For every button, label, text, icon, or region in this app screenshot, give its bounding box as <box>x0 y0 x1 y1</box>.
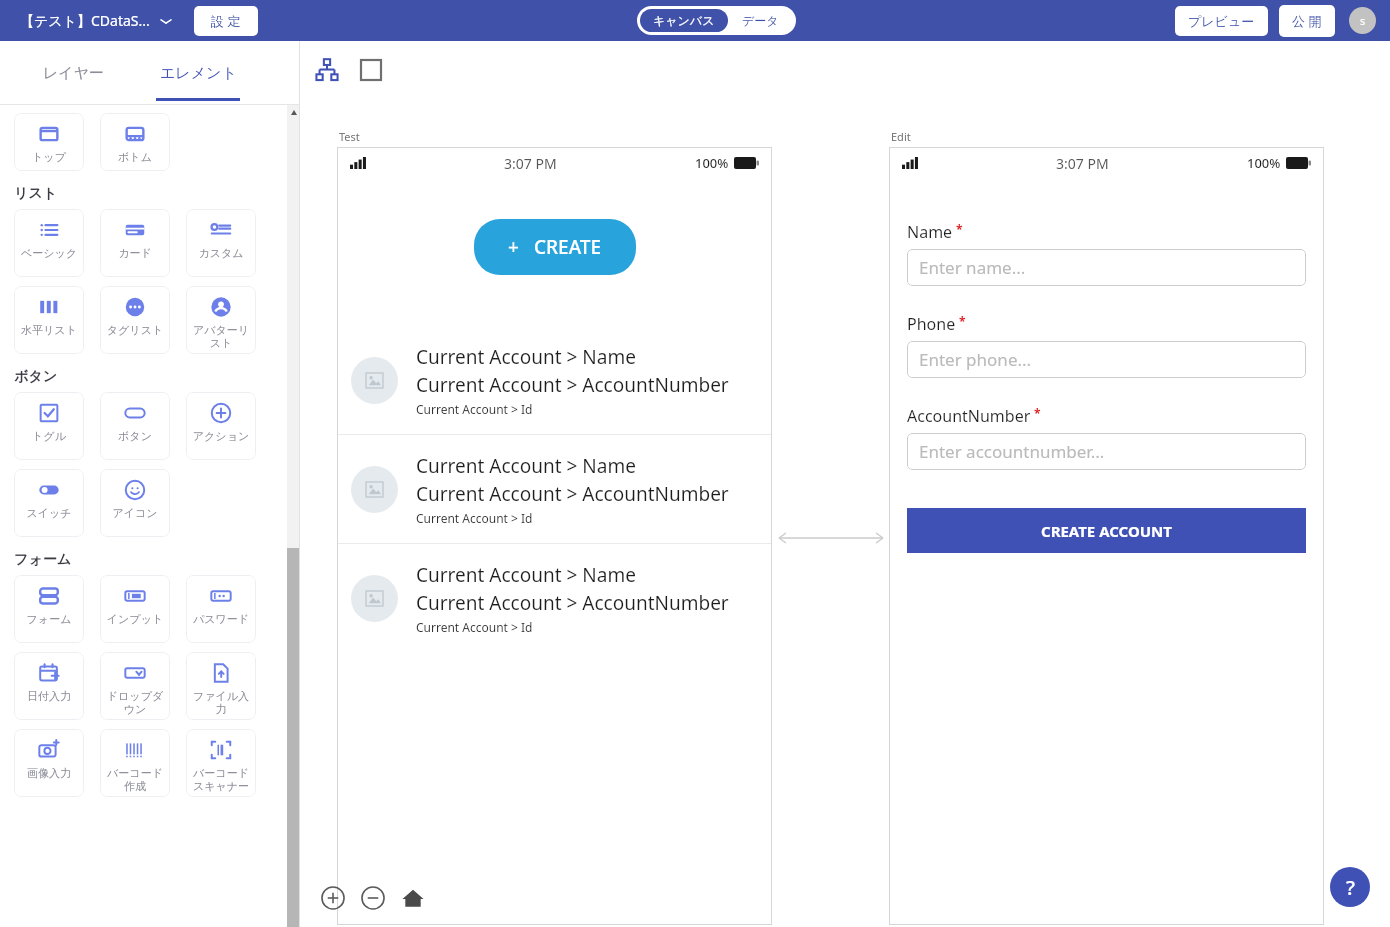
staticText: Test <box>339 129 360 144</box>
button[interactable]: スイッチ <box>14 469 84 537</box>
button[interactable]: + <box>474 219 636 275</box>
staticText: 3:07 PM <box>504 154 557 173</box>
staticText: Edit <box>891 129 911 144</box>
staticText: Current Account > Id <box>416 619 533 635</box>
staticText: s <box>1360 13 1366 28</box>
staticText: ボタン <box>102 429 168 443</box>
button[interactable]: トグル <box>14 392 84 460</box>
staticText: 日付入力 <box>16 689 82 703</box>
staticText: 画像入力 <box>16 766 82 780</box>
staticText: アクション <box>188 429 254 443</box>
staticText: カスタム <box>188 246 254 260</box>
button[interactable]: Home <box>396 881 430 915</box>
button[interactable]: キャンバス <box>640 9 728 32</box>
staticText: 100% <box>1247 154 1281 172</box>
button[interactable]: パスワード <box>186 575 256 643</box>
button[interactable]: アバターリ スト <box>186 286 256 354</box>
staticText: ベーシック <box>16 246 82 260</box>
button[interactable]: ファイル入 力 <box>186 652 256 720</box>
button[interactable]: 水平リスト <box>14 286 84 354</box>
staticText: Current Account > AccountNumber <box>416 590 729 616</box>
staticText: Phone <box>907 313 956 335</box>
staticText: バーコード 作成 <box>102 766 168 794</box>
button[interactable]: 公 開 <box>1279 5 1335 37</box>
staticText: トップ <box>16 150 82 164</box>
staticText: データ <box>742 13 779 28</box>
button[interactable]: Frame <box>356 55 386 85</box>
button[interactable]: アクション <box>186 392 256 460</box>
staticText: バーコード スキャナー <box>188 766 254 794</box>
button[interactable]: Zoom out <box>356 881 390 915</box>
button[interactable]: エレメント <box>148 41 248 105</box>
staticText: エレメント <box>160 64 237 83</box>
staticText: Enter name... <box>919 256 1026 279</box>
button[interactable]: キャンバス <box>637 6 796 35</box>
staticText: 設 定 <box>211 12 241 30</box>
staticText: ドロップダ ウン <box>102 689 168 717</box>
staticText: キャンバス <box>653 13 715 28</box>
staticText: フォーム <box>16 612 82 626</box>
button[interactable]: Zoom in <box>316 881 350 915</box>
staticText: AccountNumber <box>907 405 1031 427</box>
staticText: 【テスト】CDataS... <box>20 11 150 30</box>
button[interactable]: ボタン <box>100 392 170 460</box>
staticText: パスワード <box>188 612 254 626</box>
staticText: ボタン <box>14 368 57 386</box>
staticText: 3:07 PM <box>1056 154 1109 173</box>
button[interactable]: バーコード スキャナー <box>186 729 256 797</box>
staticText: レイヤー <box>43 64 105 83</box>
button[interactable]: バーコード 作成 <box>100 729 170 797</box>
button[interactable]: Current Account > Name <box>337 544 772 652</box>
button[interactable]: 【テスト】CDataS... <box>14 7 178 34</box>
button[interactable]: インプット <box>100 575 170 643</box>
staticText: * <box>956 221 963 237</box>
staticText: + <box>508 234 519 260</box>
staticText: トグル <box>16 429 82 443</box>
staticText: Current Account > AccountNumber <box>416 372 729 398</box>
staticText: ボトム <box>102 150 168 164</box>
staticText: Current Account > Name <box>416 453 636 479</box>
staticText: CREATE <box>534 234 602 260</box>
button[interactable]: ボトム <box>100 113 170 171</box>
button[interactable]: タグリスト <box>100 286 170 354</box>
button[interactable]: 日付入力 <box>14 652 84 720</box>
staticText: カード <box>102 246 168 260</box>
button[interactable]: Enter accountnumber... <box>907 433 1306 470</box>
staticText: ? <box>1346 874 1355 901</box>
staticText: * <box>959 313 966 329</box>
button[interactable]: カスタム <box>186 209 256 277</box>
button[interactable]: Help <box>1330 867 1370 907</box>
staticText: Current Account > Name <box>416 344 636 370</box>
button[interactable]: 設 定 <box>194 6 258 36</box>
staticText: Enter phone... <box>919 348 1032 371</box>
staticText: インプット <box>102 612 168 626</box>
staticText: タグリスト <box>102 323 168 337</box>
button[interactable]: ドロップダ ウン <box>100 652 170 720</box>
button[interactable]: カード <box>100 209 170 277</box>
button[interactable]: Enter phone... <box>907 341 1306 378</box>
staticText: リスト <box>14 185 57 203</box>
staticText: Current Account > AccountNumber <box>416 481 729 507</box>
button[interactable]: Current Account > Name <box>337 326 772 434</box>
button[interactable]: Hierarchy <box>312 55 342 85</box>
button[interactable]: データ <box>728 9 793 32</box>
button[interactable]: Account <box>1349 7 1376 34</box>
staticText: CREATE ACCOUNT <box>1041 521 1172 541</box>
button[interactable]: アイコン <box>100 469 170 537</box>
button[interactable]: フォーム <box>14 575 84 643</box>
button[interactable]: 画像入力 <box>14 729 84 797</box>
staticText: 水平リスト <box>16 323 82 337</box>
button[interactable]: CREATE ACCOUNT <box>907 508 1306 553</box>
button[interactable]: プレビュー <box>1175 6 1268 36</box>
staticText: フォーム <box>14 551 71 569</box>
button[interactable]: ベーシック <box>14 209 84 277</box>
button[interactable]: Enter name... <box>907 249 1306 286</box>
staticText: スイッチ <box>16 506 82 520</box>
staticText: プレビュー <box>1188 13 1255 29</box>
button[interactable]: レイヤー <box>0 41 148 105</box>
staticText: Current Account > Name <box>416 562 636 588</box>
staticText: ファイル入 力 <box>188 689 254 717</box>
button[interactable]: トップ <box>14 113 84 171</box>
staticText: アバターリ スト <box>188 323 254 351</box>
button[interactable]: Current Account > Name <box>337 435 772 543</box>
